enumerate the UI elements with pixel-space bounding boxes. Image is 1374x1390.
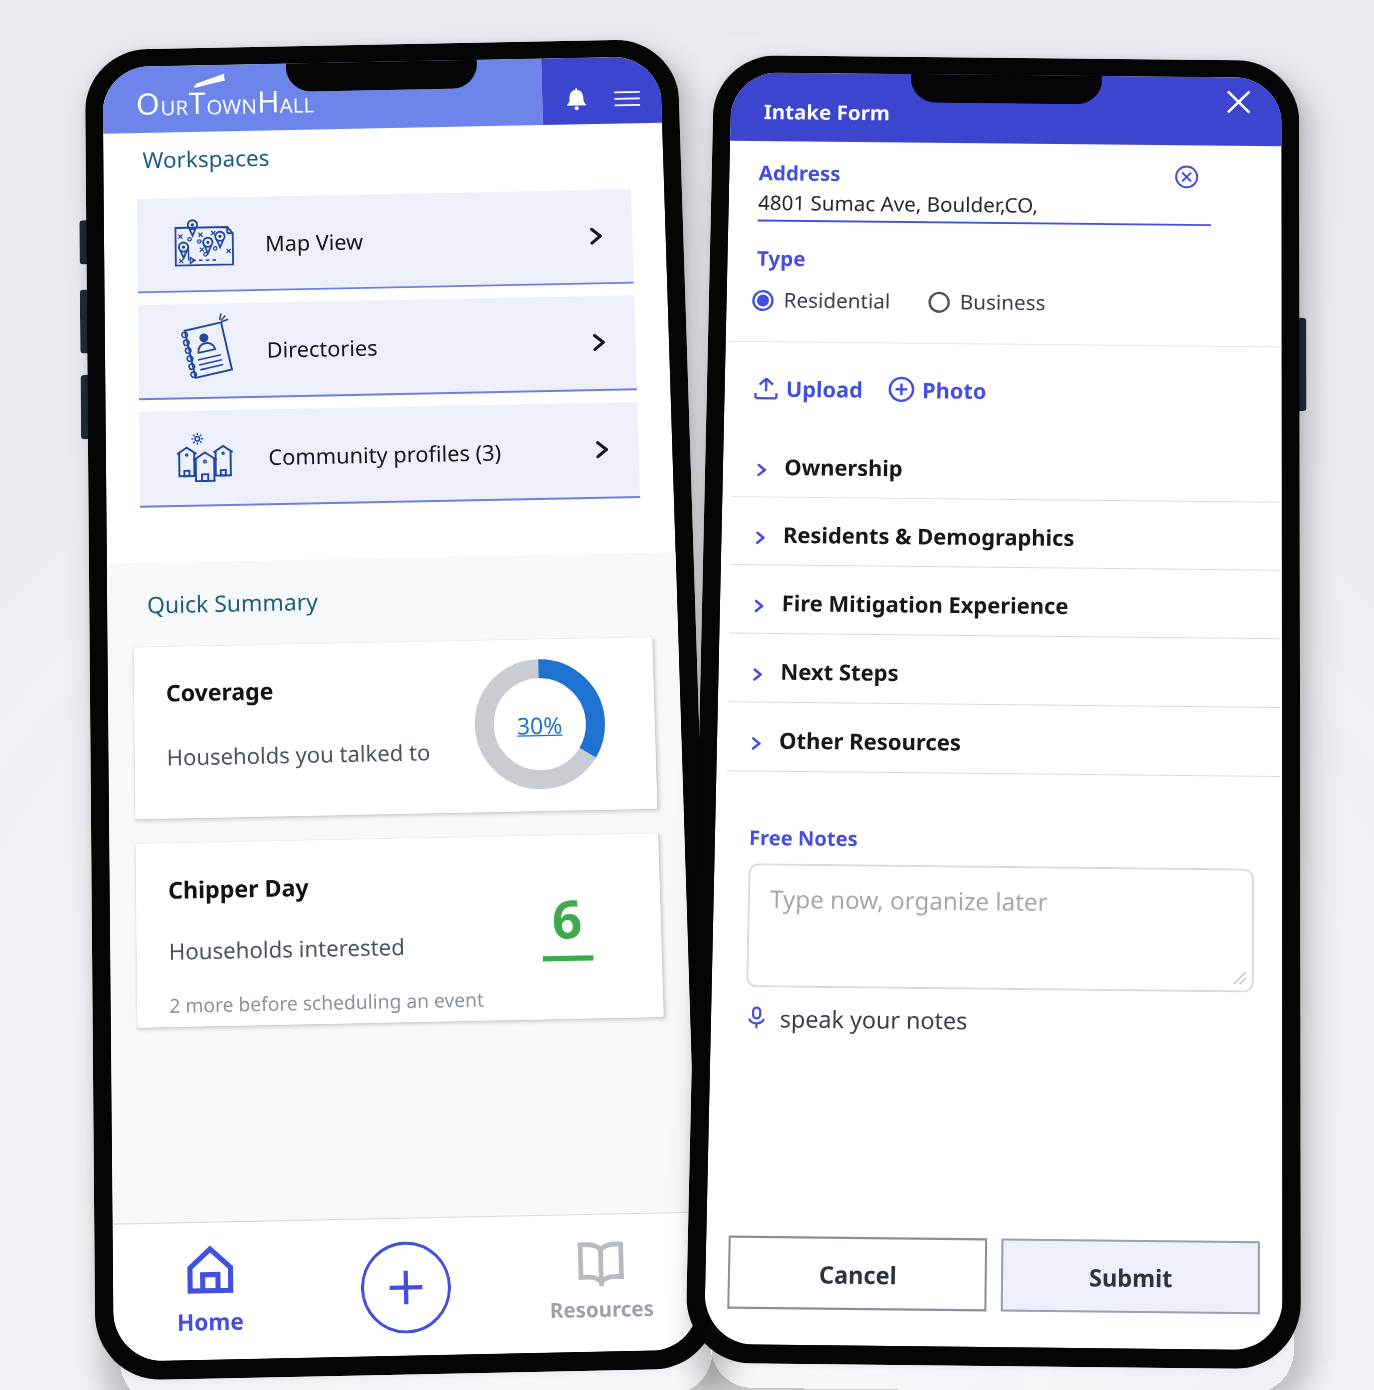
staticText: Type <box>757 244 806 273</box>
staticText: Households interested <box>169 931 405 966</box>
staticText: Upload <box>786 373 863 403</box>
staticText: Households you talked to <box>166 736 431 772</box>
button[interactable]: Map View <box>137 189 634 291</box>
staticText: Community profiles (3) <box>268 437 501 471</box>
staticText: 2 more before scheduling an event <box>169 986 484 1019</box>
button[interactable]: Close <box>1219 83 1258 121</box>
staticText: OWN <box>206 92 257 121</box>
button[interactable]: Resources <box>502 1213 701 1354</box>
staticText: Chipper Day <box>168 871 309 905</box>
button[interactable]: Type now, organize later <box>746 863 1254 993</box>
staticText: H <box>257 81 280 121</box>
staticText: Resources <box>549 1294 655 1324</box>
button[interactable]: Add <box>360 1241 452 1334</box>
button[interactable]: Business <box>928 288 1046 317</box>
staticText: Directories <box>266 332 378 363</box>
staticText: Free Notes <box>749 824 859 852</box>
staticText: T <box>188 82 207 122</box>
staticText: Residential <box>783 286 891 315</box>
staticText: Map View <box>265 226 364 257</box>
staticText: Cancel <box>819 1257 897 1291</box>
button[interactable]: Other Resources <box>716 702 1282 777</box>
staticText: speak your notes <box>780 1002 968 1035</box>
staticText: Ownership <box>784 452 903 482</box>
staticText: Quick Summary <box>147 585 319 619</box>
staticText: Coverage <box>166 674 274 708</box>
staticText: UR <box>160 94 189 122</box>
button[interactable]: Clear address <box>1172 162 1201 191</box>
staticText: 6 <box>551 881 583 954</box>
staticText: Business <box>960 288 1047 317</box>
staticText: Address <box>758 159 841 188</box>
staticText: Residents & Demographics <box>783 519 1075 552</box>
staticText: ALL <box>279 91 315 120</box>
button[interactable]: Photo <box>888 375 988 405</box>
staticText: Fire Mitigation Experience <box>781 587 1069 620</box>
staticText: Intake Form <box>764 98 891 127</box>
staticText: Type now, organize later <box>770 882 1048 918</box>
staticText: Other Resources <box>779 725 962 757</box>
button[interactable]: Home <box>113 1221 309 1362</box>
button[interactable]: speak your notes <box>745 1001 968 1036</box>
staticText: Workspaces <box>142 142 270 174</box>
staticText: Home <box>177 1304 245 1337</box>
staticText: Next Steps <box>780 656 900 687</box>
staticText: Photo <box>922 375 988 405</box>
staticText: 4801 Sumac Ave, Boulder,CO, <box>758 189 1039 219</box>
button[interactable]: Directories <box>138 295 637 398</box>
button[interactable]: Residential <box>752 286 891 315</box>
button[interactable]: Submit <box>1001 1238 1260 1314</box>
button[interactable]: Next Steps <box>718 633 1282 708</box>
staticText: 30% <box>516 709 563 740</box>
button[interactable]: Fire Mitigation Experience <box>719 565 1282 639</box>
button[interactable]: Community profiles (3) <box>139 402 640 506</box>
button[interactable]: Upload <box>754 373 863 403</box>
button[interactable]: Notifications <box>550 74 602 125</box>
button[interactable]: Coverage <box>133 637 658 820</box>
button[interactable]: Ownership <box>722 402 1282 503</box>
staticText: O <box>136 83 161 123</box>
button[interactable]: Chipper Day <box>135 833 664 1028</box>
button[interactable]: Cancel <box>727 1236 987 1311</box>
button[interactable]: Residents & Demographics <box>721 497 1282 571</box>
button[interactable]: Menu <box>601 73 653 124</box>
staticText: Submit <box>1089 1260 1173 1294</box>
